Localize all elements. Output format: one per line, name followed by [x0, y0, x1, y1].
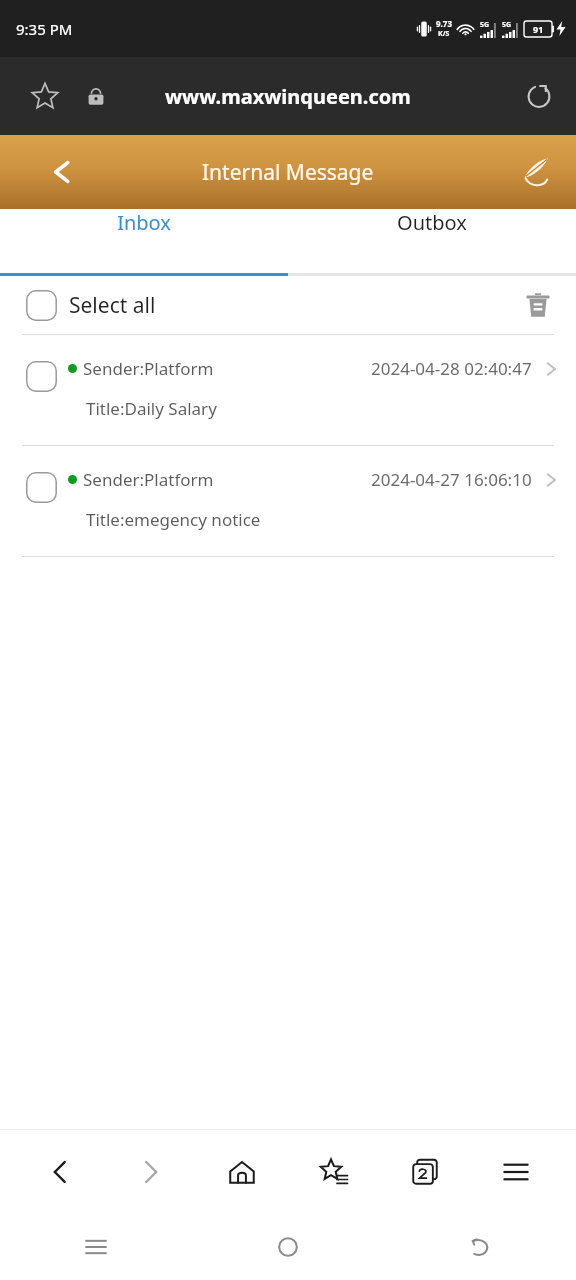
staticText: www.maxwinqueen.com — [165, 83, 411, 110]
button[interactable]: Select all — [26, 290, 156, 321]
staticText: Sender:Platform — [83, 357, 214, 380]
button[interactable]: Outbox — [288, 209, 576, 236]
staticText: Inbox — [117, 209, 171, 236]
button[interactable]: Delete — [516, 283, 560, 327]
button[interactable]: Refresh — [520, 77, 558, 115]
staticText: 5G — [502, 20, 512, 30]
button[interactable]: Menu — [485, 1141, 547, 1203]
staticText: 9.73 — [436, 18, 452, 29]
button[interactable]: Back — [40, 150, 84, 194]
staticText: 91 — [533, 23, 544, 35]
staticText: Title:Daily Salary — [86, 397, 217, 420]
button[interactable]: Sender:Platform — [0, 446, 576, 557]
staticText: Sender:Platform — [83, 468, 214, 491]
button[interactable]: Bookmark — [28, 79, 62, 113]
button[interactable]: Home — [192, 1214, 384, 1280]
staticText: 5G — [480, 20, 490, 30]
button[interactable]: Site security — [80, 80, 112, 112]
staticText: 2024-04-28 02:40:47 — [371, 357, 532, 380]
button[interactable]: Forward — [120, 1141, 182, 1203]
button[interactable]: Sender:Platform — [0, 335, 576, 446]
staticText: 9:35 PM — [16, 19, 73, 39]
staticText: Select all — [69, 291, 156, 320]
staticText: Internal Message — [202, 158, 374, 187]
button[interactable]: Compose message — [512, 149, 558, 195]
staticText: 2024-04-27 16:06:10 — [371, 468, 532, 491]
button[interactable]: Back — [384, 1214, 576, 1280]
button[interactable]: Back — [29, 1141, 91, 1203]
staticText: Title:emegency notice — [86, 508, 261, 531]
button[interactable]: Home — [211, 1141, 273, 1203]
button[interactable]: Inbox — [0, 209, 288, 236]
button[interactable]: Bookmarks — [303, 1141, 365, 1203]
button[interactable]: Tabs — [394, 1141, 456, 1203]
staticText: Outbox — [397, 209, 467, 236]
button[interactable]: Recent apps — [0, 1214, 192, 1280]
staticText: K/S — [438, 29, 450, 39]
